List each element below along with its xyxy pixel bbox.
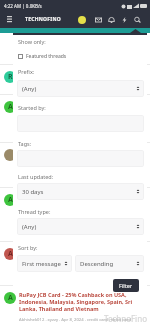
staticText: Tags: xyxy=(18,140,32,147)
staticText: 4:22 AM | 0.0KB/s xyxy=(4,3,42,9)
staticText: Filter xyxy=(119,282,133,289)
button[interactable]: Featured threads xyxy=(18,52,67,60)
staticText: Show only: xyxy=(18,38,46,45)
button[interactable]: Search xyxy=(131,12,144,27)
staticText: Last updated: xyxy=(18,173,54,180)
staticText: A xyxy=(8,195,13,205)
staticText: TECHNOFINO xyxy=(25,16,61,23)
button[interactable]: Alerts xyxy=(105,12,118,27)
staticText: Sort by: xyxy=(18,244,38,251)
staticText: TechnoFino xyxy=(104,313,147,324)
button[interactable]: What's new xyxy=(118,12,131,27)
staticText: 30 days xyxy=(22,188,44,196)
staticText: RuPay JCB Card - 25% Cashback on USA, In… xyxy=(19,291,144,312)
button[interactable]: 30 days xyxy=(17,183,144,200)
staticText: A xyxy=(8,293,13,303)
button[interactable]: Descending xyxy=(75,255,144,272)
button[interactable]: Filter xyxy=(113,279,139,292)
staticText: (Any) xyxy=(22,85,37,93)
staticText: A xyxy=(8,102,13,112)
staticText: Featured threads xyxy=(26,53,67,60)
button[interactable]: (Any) xyxy=(17,218,144,235)
staticText: Descending xyxy=(80,260,114,268)
button[interactable]: Menu xyxy=(2,12,16,26)
button[interactable]: (Any) xyxy=(17,80,144,97)
button[interactable]: First message xyxy=(17,255,72,272)
button[interactable]: Inbox xyxy=(92,12,105,27)
staticText: (Any) xyxy=(22,223,37,231)
staticText: Prefix: xyxy=(18,68,35,75)
staticText: First message xyxy=(22,260,61,268)
staticText: Thread type: xyxy=(18,208,51,215)
staticText: R xyxy=(8,72,13,82)
staticText: A xyxy=(8,249,13,259)
button[interactable]: Account xyxy=(75,13,89,27)
staticText: Abhishek012 . xyzzy . Apr 8, 2024 . cred… xyxy=(19,317,131,323)
staticText: Started by: xyxy=(18,104,46,111)
